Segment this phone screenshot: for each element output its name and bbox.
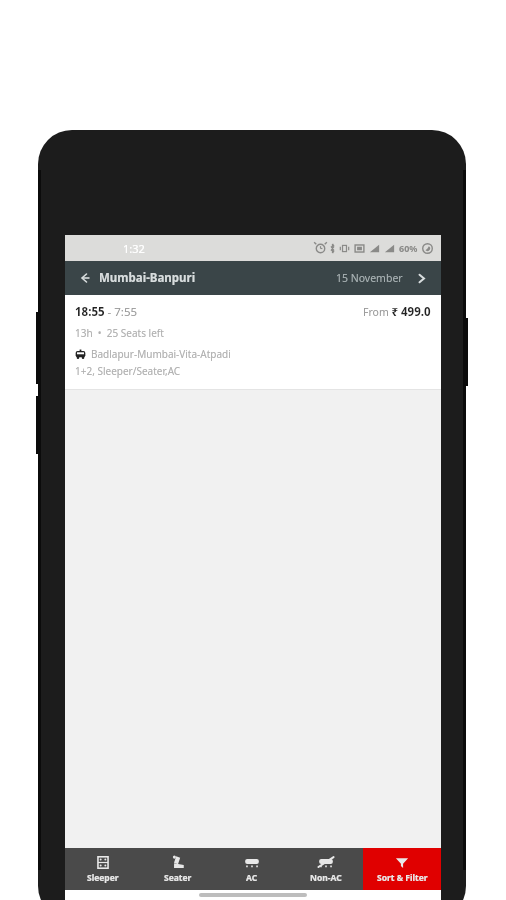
staticText: AC	[246, 872, 258, 884]
button[interactable]: AC	[215, 848, 289, 890]
staticText: Non-AC	[310, 872, 342, 884]
staticText: From ₹ 499.0	[363, 304, 431, 320]
staticText: Badlapur-Mumbai-Vita-Atpadi	[91, 347, 231, 361]
staticText: 1+2, Sleeper/Seater,AC	[75, 364, 181, 378]
staticText: 60%	[399, 242, 418, 254]
staticText: Seater	[164, 872, 192, 884]
staticText: Sort & Filter	[377, 872, 428, 884]
staticText: Sleeper	[87, 872, 119, 884]
button[interactable]: Next day	[413, 270, 429, 286]
button[interactable]: Sort & Filter	[363, 848, 441, 890]
staticText: 1:32	[123, 241, 145, 256]
button[interactable]: Seater	[140, 848, 215, 890]
staticText: 18:55 - 7:55	[75, 304, 138, 320]
staticText: Mumbai-Banpuri	[99, 270, 196, 286]
button[interactable]: Back	[65, 261, 441, 295]
button[interactable]: 18:55 - 7:55	[65, 295, 441, 389]
button[interactable]: Back	[77, 270, 93, 286]
staticText: 13h • 25 Seats left	[75, 326, 164, 340]
button[interactable]: Non-AC	[289, 848, 363, 890]
button[interactable]: Sleeper	[65, 848, 140, 890]
staticText: 15 November	[336, 271, 403, 285]
